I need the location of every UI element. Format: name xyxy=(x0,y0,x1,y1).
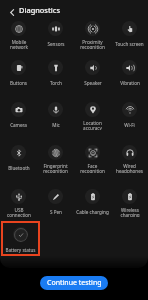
staticText: Buttons xyxy=(10,80,27,86)
button[interactable]: Back xyxy=(4,4,20,20)
staticText: Torch xyxy=(50,80,62,86)
staticText: USB connection xyxy=(7,207,31,217)
button[interactable]: Speaker xyxy=(74,52,111,88)
staticText: Wired headphones xyxy=(116,163,143,173)
staticText: Diagnostics xyxy=(19,5,60,15)
button[interactable]: Touch screen xyxy=(111,13,148,49)
staticText: Wi-Fi xyxy=(124,122,135,128)
button[interactable]: Bluetooth xyxy=(0,137,37,173)
button[interactable]: Torch xyxy=(37,52,74,88)
staticText: Mic xyxy=(52,122,60,128)
staticText: Proximity recognition xyxy=(80,39,105,49)
button[interactable]: Continue testing xyxy=(40,276,108,290)
staticText: Fingerprint recognition xyxy=(43,163,68,173)
button[interactable]: Location accuracy xyxy=(74,94,111,130)
staticText: S Pen xyxy=(50,209,62,215)
button[interactable]: Cable charging xyxy=(74,181,111,217)
button[interactable]: Wired headphones xyxy=(111,137,148,173)
button[interactable]: S Pen xyxy=(37,181,74,217)
staticText: Battery status xyxy=(5,247,36,253)
button[interactable]: Face recognition xyxy=(74,137,111,173)
staticText: Touch screen xyxy=(115,41,144,47)
button[interactable]: Proximity recognition xyxy=(74,13,111,49)
button[interactable]: Wireless charging xyxy=(111,181,148,217)
staticText: Bluetooth xyxy=(8,165,30,171)
button[interactable]: Buttons xyxy=(0,52,37,88)
staticText: Speaker xyxy=(84,80,102,86)
staticText: Continue testing xyxy=(47,278,102,288)
button[interactable]: Battery status xyxy=(3,223,38,254)
button[interactable]: Wi-Fi xyxy=(111,94,148,130)
button[interactable]: Camera xyxy=(0,94,37,130)
staticText: Wireless charging xyxy=(120,207,140,217)
staticText: Mobile network xyxy=(10,39,28,49)
button[interactable]: Mic xyxy=(37,94,74,130)
staticText: Face recognition xyxy=(80,163,105,173)
button[interactable]: USB connection xyxy=(0,181,37,217)
staticText: Camera xyxy=(10,122,27,128)
staticText: Sensors xyxy=(47,41,65,47)
button[interactable]: Vibration xyxy=(111,52,148,88)
button[interactable]: Mobile network xyxy=(0,13,37,49)
staticText: Cable charging xyxy=(76,209,109,215)
staticText: Vibration xyxy=(120,80,140,86)
button[interactable]: Sensors xyxy=(37,13,74,49)
staticText: Location accuracy xyxy=(83,120,102,130)
button[interactable]: Fingerprint recognition xyxy=(37,137,74,173)
